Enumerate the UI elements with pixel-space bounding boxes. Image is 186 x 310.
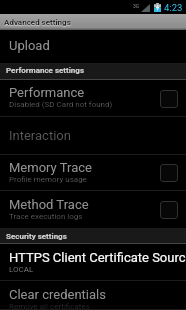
staticText: HTTPS Client Certificate Source — [9, 250, 186, 265]
staticText: Upload — [9, 38, 50, 53]
button[interactable]: Clear credentials — [0, 281, 186, 310]
button[interactable]: Upload — [0, 30, 186, 64]
staticText: Memory Trace — [9, 160, 92, 175]
staticText: 3G — [133, 3, 140, 9]
button[interactable]: HTTPS Client Certificate Source — [0, 244, 186, 281]
staticText: Profile memory usage — [9, 175, 87, 184]
button[interactable]: Toggle Performance — [160, 90, 178, 108]
staticText: 4:23 — [164, 2, 183, 13]
button[interactable]: Performance — [0, 80, 186, 117]
staticText: Trace execution logs — [9, 212, 83, 221]
staticText: Security settings — [6, 232, 67, 241]
staticText: Clear credentials — [9, 287, 106, 302]
button[interactable]: Interaction — [0, 117, 186, 155]
staticText: Disabled (SD Card not found) — [9, 100, 113, 109]
button[interactable]: Method Trace — [0, 191, 186, 229]
staticText: LOCAL — [9, 265, 34, 274]
staticText: Interaction — [9, 128, 71, 143]
staticText: Performance — [9, 85, 85, 100]
button[interactable]: Memory Trace — [0, 155, 186, 191]
staticText: Method Trace — [9, 197, 89, 212]
staticText: Performance settings — [6, 66, 85, 75]
button[interactable]: Toggle Method Trace — [160, 201, 178, 219]
button[interactable]: Toggle Memory Trace — [160, 164, 178, 182]
staticText: Remove all certificates — [9, 302, 90, 310]
staticText: Advanced settings — [4, 18, 71, 27]
